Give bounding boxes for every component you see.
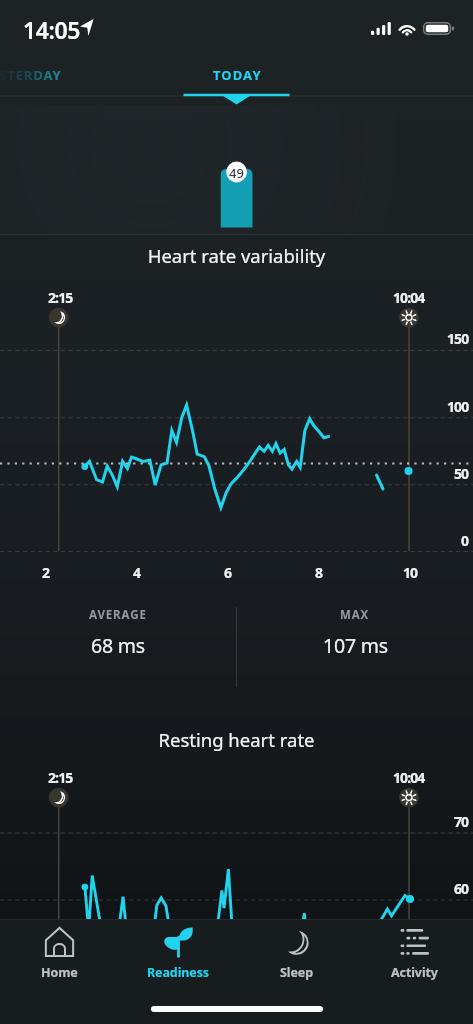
button[interactable]: AVERAGE [0, 607, 236, 659]
staticText: AVERAGE [89, 607, 147, 623]
staticText: MAX [340, 607, 370, 623]
staticText: 6 [224, 563, 232, 582]
staticText: 70 [454, 812, 469, 831]
staticText: 0 [461, 531, 469, 550]
staticText: 68 ms [91, 632, 145, 659]
button[interactable]: Activity [355, 920, 473, 950]
button[interactable]: Home [0, 920, 119, 950]
button[interactable]: MAX [237, 607, 473, 659]
staticText: 100 [447, 397, 469, 416]
button[interactable]: TODAY [162, 56, 312, 105]
button[interactable]: Readiness [119, 920, 237, 950]
staticText: 2:15 [48, 768, 73, 787]
staticText: Home [41, 964, 78, 981]
staticText: Readiness [147, 964, 210, 981]
staticText: 4 [133, 563, 141, 582]
staticText: 50 [454, 464, 469, 483]
staticText: 10:04 [393, 768, 425, 787]
staticText: 2 [42, 563, 50, 582]
staticText: 2:15 [48, 288, 73, 307]
staticText: Heart rate variability [0, 243, 473, 268]
staticText: Resting heart rate [0, 727, 473, 752]
staticText: 49 [229, 164, 244, 182]
staticText: 8 [315, 563, 323, 582]
staticText: Sleep [280, 964, 313, 981]
staticText: Activity [391, 964, 438, 981]
staticText: TODAY [213, 66, 262, 84]
staticText: 14:05 [23, 14, 80, 45]
button[interactable]: Sleep [237, 920, 355, 950]
staticText: 60 [454, 879, 469, 898]
staticText: YESTERDAY [0, 66, 62, 84]
button[interactable]: YESTERDAY [0, 56, 120, 105]
staticText: 10:04 [393, 288, 425, 307]
staticText: 150 [447, 329, 469, 348]
staticText: 107 ms [323, 632, 388, 659]
staticText: 10 [403, 563, 418, 582]
